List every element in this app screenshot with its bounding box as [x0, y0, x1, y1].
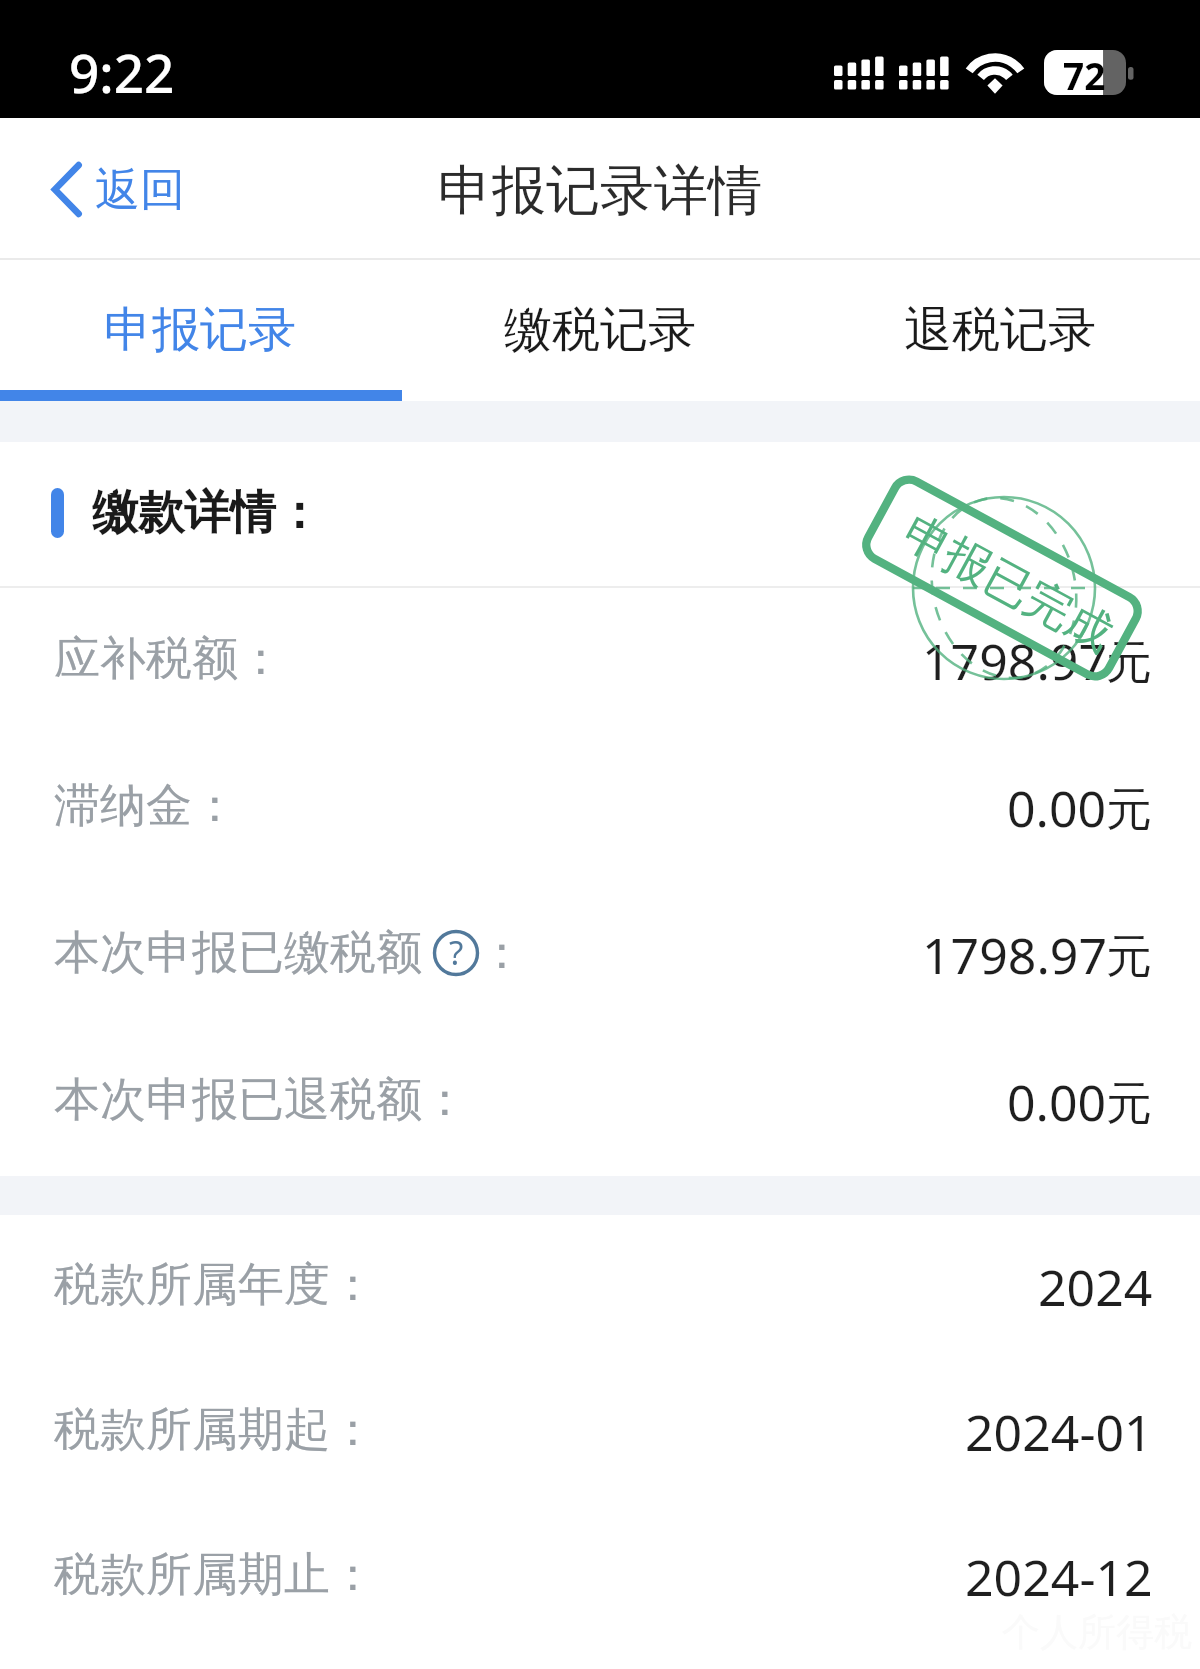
button[interactable]: 税款所属年度：	[0, 1215, 1200, 1360]
button[interactable]: 退税记录	[800, 260, 1200, 401]
staticText: 缴款详情：	[92, 484, 322, 542]
button[interactable]: 滞纳金：	[0, 735, 1200, 882]
button[interactable]: 税款所属期止：	[0, 1505, 1200, 1650]
staticText: 元	[1106, 928, 1152, 986]
button[interactable]: 应补税额：	[0, 588, 1200, 735]
staticText: 应补税额：	[54, 630, 284, 688]
button[interactable]: 本次申报已缴税额	[0, 882, 1200, 1029]
staticText: 申报已完成	[893, 504, 1123, 664]
staticText: 1798.97	[922, 921, 1107, 989]
staticText: 2024-01	[965, 1398, 1153, 1466]
staticText: 返回	[95, 162, 185, 219]
button[interactable]: 税款所属期起：	[0, 1360, 1200, 1505]
staticText: 缴税记录	[504, 300, 696, 360]
staticText: 1798.97	[922, 627, 1107, 695]
staticText: 税款所属期止：	[54, 1546, 376, 1604]
staticText: 税款所属年度：	[54, 1256, 376, 1314]
staticText: 0.00	[1007, 774, 1107, 842]
button[interactable]: 申报记录	[0, 260, 400, 401]
staticText: 滞纳金：	[54, 777, 238, 835]
staticText: 元	[1106, 634, 1152, 692]
staticText: 申报记录详情	[438, 157, 762, 225]
staticText: 元	[1106, 1075, 1152, 1133]
button[interactable]: 缴税记录	[400, 260, 800, 401]
button[interactable]: 本次申报已退税额：	[0, 1029, 1200, 1176]
staticText: 元	[1106, 781, 1152, 839]
button[interactable]: 返回	[0, 145, 213, 234]
staticText: 申报记录	[104, 300, 296, 360]
button[interactable]: 帮助说明	[433, 930, 479, 976]
staticText: 退税记录	[904, 300, 1096, 360]
staticText: 2024-12	[965, 1543, 1153, 1611]
staticText: 9:22	[69, 36, 175, 108]
staticText: ?	[449, 930, 464, 975]
staticText: 税款所属期起：	[54, 1401, 376, 1459]
staticText: ：	[479, 924, 525, 982]
staticText: 本次申报已退税额：	[54, 1071, 468, 1129]
staticText: 本次申报已缴税额	[54, 924, 422, 982]
staticText: 72	[1063, 50, 1106, 95]
staticText: 2024	[1038, 1253, 1153, 1321]
staticText: 0.00	[1007, 1068, 1107, 1136]
